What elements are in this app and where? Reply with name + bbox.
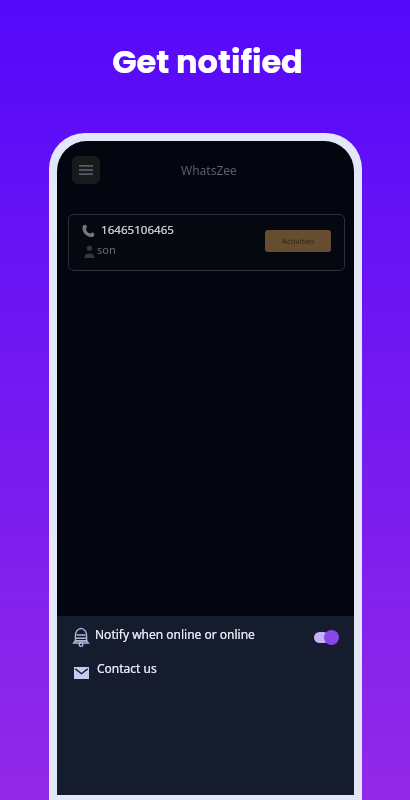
staticText: Contact us — [97, 660, 157, 676]
staticText: son — [97, 242, 116, 257]
button[interactable]: 16465106465 — [68, 214, 345, 271]
staticText: Get notified — [112, 39, 303, 84]
staticText: Activities — [282, 236, 315, 247]
button[interactable]: Menu — [72, 156, 100, 184]
staticText: 16465106465 — [101, 222, 174, 238]
staticText: Notify when online or online — [95, 626, 255, 642]
button[interactable]: Contact us — [57, 656, 354, 690]
staticText: WhatsZee — [181, 162, 237, 178]
button[interactable]: Notify when online or online — [57, 616, 354, 656]
button[interactable]: Activities — [265, 230, 331, 252]
